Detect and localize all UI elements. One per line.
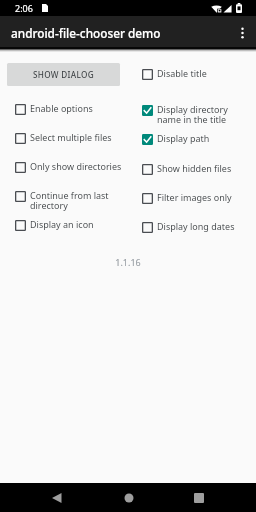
button[interactable]: Display long dates	[142, 222, 254, 234]
staticText: SHOW DIALOG	[33, 69, 94, 80]
button[interactable]: Continue from last directory	[15, 191, 141, 214]
staticText: Disable title	[157, 67, 207, 79]
button[interactable]: Display directory name in the title	[142, 105, 254, 128]
staticText: Display long dates	[157, 220, 235, 232]
staticText: Enable options	[30, 102, 93, 114]
button[interactable]: More options	[228, 16, 256, 49]
staticText: Display path	[157, 132, 210, 144]
staticText: Filter images only	[157, 191, 232, 203]
button[interactable]: Disable title	[142, 69, 254, 81]
button[interactable]: Back	[32, 483, 81, 512]
button[interactable]: Home	[104, 483, 153, 512]
button[interactable]: Display path	[142, 134, 254, 146]
button[interactable]: Show hidden files	[142, 164, 254, 176]
staticText: Only show directories	[30, 160, 122, 172]
button[interactable]: Display an icon	[15, 220, 141, 232]
button[interactable]: Filter images only	[142, 193, 254, 205]
staticText: android-file-chooser demo	[11, 25, 161, 41]
button[interactable]: Only show directories	[15, 162, 141, 174]
staticText: 1.1.16	[115, 256, 141, 268]
button[interactable]: Enable options	[15, 104, 141, 116]
staticText: Display an icon	[30, 218, 94, 230]
staticText: Show hidden files	[157, 162, 232, 174]
button[interactable]: Recents	[174, 483, 223, 512]
staticText: Continue from last directory	[30, 189, 109, 212]
button[interactable]: Select multiple files	[15, 133, 141, 145]
staticText: 2:06	[15, 2, 33, 14]
staticText: Display directory name in the title	[157, 103, 228, 126]
staticText: Select multiple files	[30, 131, 112, 143]
button[interactable]: SHOW DIALOG	[7, 63, 120, 86]
